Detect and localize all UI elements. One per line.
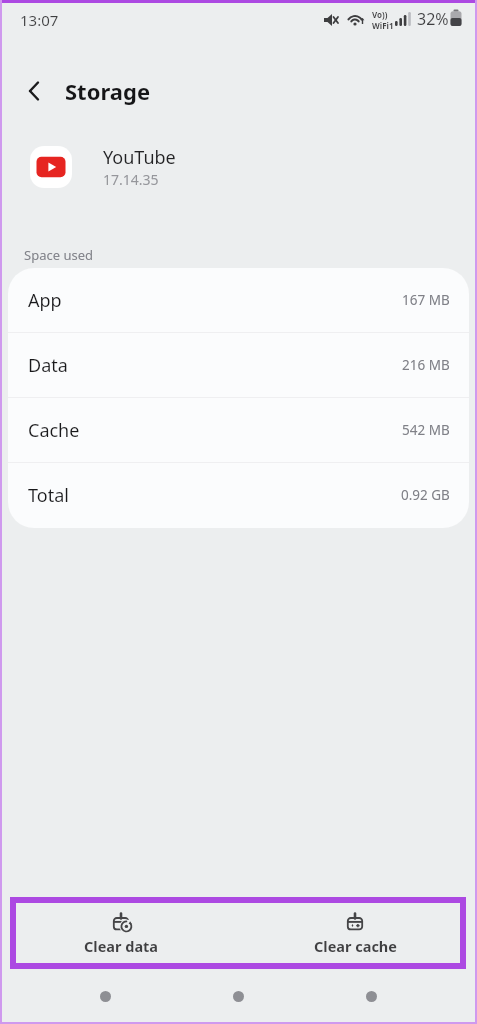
staticText: Total [28, 483, 69, 508]
button[interactable]: Cache [8, 398, 469, 462]
staticText: 0.92 GB [401, 486, 450, 504]
staticText: App [28, 288, 62, 313]
staticText: Data [28, 353, 68, 378]
staticText: Storage [65, 76, 151, 106]
button[interactable] [14, 70, 56, 112]
staticText: Clear cache [314, 936, 397, 956]
staticText: YouTube [103, 145, 176, 170]
staticText: Vo)) [372, 9, 388, 20]
staticText: 167 MB [402, 291, 450, 309]
staticText: 13:07 [20, 10, 59, 30]
button[interactable]: Data [8, 333, 469, 397]
staticText: 542 MB [402, 421, 450, 439]
staticText: Space used [24, 246, 93, 264]
staticText: 216 MB [402, 356, 450, 374]
button[interactable]: App [8, 268, 469, 332]
staticText: 17.14.35 [103, 170, 159, 189]
staticText: Clear data [84, 936, 159, 956]
staticText: Cache [28, 418, 80, 443]
staticText: 32% [417, 8, 449, 30]
staticText: WiFi1 [372, 20, 394, 31]
button[interactable]: Clear data [66, 903, 176, 961]
button[interactable]: Clear cache [300, 903, 410, 961]
button[interactable]: Total [8, 463, 469, 527]
